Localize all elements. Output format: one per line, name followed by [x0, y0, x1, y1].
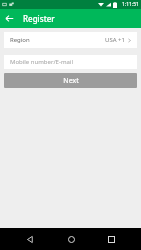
button[interactable]: Recent apps [100, 228, 122, 250]
staticText: USA +1 [105, 36, 125, 44]
staticText: Mobile number/E-mail [10, 58, 73, 66]
button[interactable]: Back [19, 228, 41, 250]
button[interactable]: Region [4, 32, 137, 48]
button[interactable]: Home [60, 228, 82, 250]
staticText: 1:11:51 [122, 1, 139, 8]
button[interactable]: Next [4, 73, 137, 88]
button[interactable]: Mobile number/E-mail [4, 55, 137, 69]
staticText: Register [23, 13, 55, 24]
staticText: Region [10, 36, 30, 44]
button[interactable]: Back [0, 9, 19, 28]
staticText: Next [63, 76, 79, 86]
